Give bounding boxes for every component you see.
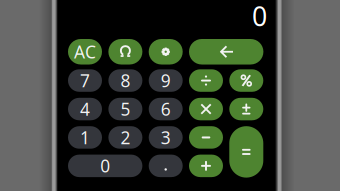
button[interactable]: Delete	[189, 39, 263, 64]
button[interactable]: Minus	[189, 126, 223, 149]
button[interactable]: Plus	[189, 155, 223, 177]
staticText: 7	[80, 69, 90, 92]
button[interactable]: 7	[68, 69, 102, 92]
button[interactable]: Multiply	[189, 98, 223, 120]
button[interactable]: Decimal point	[149, 155, 183, 177]
button[interactable]: 1	[68, 126, 102, 149]
button[interactable]: 0	[68, 155, 142, 177]
staticText: 9	[161, 69, 171, 92]
staticText: 6	[161, 97, 171, 120]
button[interactable]: 2	[108, 126, 142, 149]
button[interactable]: 9	[149, 69, 183, 92]
staticText: 3	[161, 126, 171, 149]
staticText: 8	[120, 69, 130, 92]
button[interactable]: 6	[149, 98, 183, 120]
button[interactable]: Settings	[149, 39, 183, 64]
button[interactable]: 8	[108, 69, 142, 92]
staticText: 5	[120, 97, 130, 120]
button[interactable]: Divide	[189, 69, 223, 92]
button[interactable]: 3	[149, 126, 183, 149]
staticText: 4	[80, 97, 90, 120]
staticText: 2	[120, 126, 130, 149]
button[interactable]: 4	[68, 98, 102, 120]
staticText: 0	[252, 0, 267, 34]
button[interactable]: Scientific	[108, 39, 142, 64]
button[interactable]: Plus minus	[229, 98, 263, 120]
button[interactable]: Percent	[229, 69, 263, 92]
button[interactable]: 5	[108, 98, 142, 120]
staticText: 1	[80, 126, 90, 149]
staticText: 0	[100, 154, 110, 177]
button[interactable]: Equals	[229, 126, 263, 178]
button[interactable]: AC	[68, 39, 102, 64]
staticText: AC	[74, 40, 96, 63]
